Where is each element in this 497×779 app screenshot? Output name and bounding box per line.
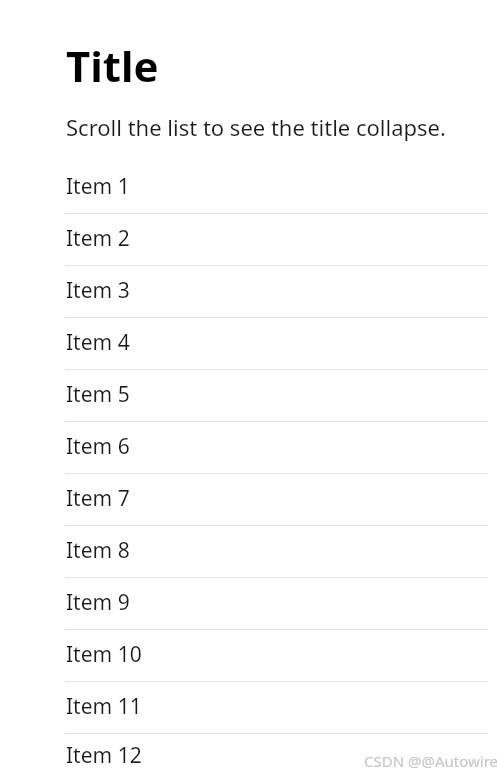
staticText: Scroll the list to see the title collaps…: [66, 112, 446, 142]
button[interactable]: Item 5: [0, 370, 497, 422]
staticText: Item 9: [66, 588, 130, 617]
button[interactable]: Item 8: [0, 526, 497, 578]
staticText: Item 6: [66, 432, 130, 461]
button[interactable]: Item 11: [0, 682, 497, 734]
staticText: Item 1: [66, 172, 130, 201]
staticText: Title: [66, 37, 159, 94]
staticText: Item 7: [66, 484, 130, 513]
button[interactable]: Item 10: [0, 630, 497, 682]
staticText: Item 5: [66, 380, 130, 409]
button[interactable]: Item 3: [0, 266, 497, 318]
button[interactable]: Item 2: [0, 214, 497, 266]
staticText: Item 10: [66, 640, 142, 669]
staticText: Item 11: [66, 692, 142, 721]
button[interactable]: Item 6: [0, 422, 497, 474]
button[interactable]: Item 7: [0, 474, 497, 526]
staticText: Item 4: [66, 328, 130, 357]
staticText: Item 2: [66, 224, 130, 253]
staticText: Item 3: [66, 276, 130, 305]
button[interactable]: Item 1: [0, 162, 497, 214]
button[interactable]: Item 12: [0, 734, 497, 779]
button[interactable]: Item 4: [0, 318, 497, 370]
staticText: CSDN @@Autowire: [364, 751, 497, 771]
staticText: Item 8: [66, 536, 130, 565]
button[interactable]: Item 9: [0, 578, 497, 630]
staticText: Item 12: [66, 741, 142, 770]
